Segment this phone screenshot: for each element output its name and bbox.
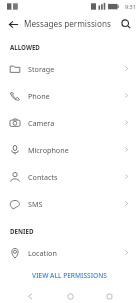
staticText: Messages permissions	[24, 18, 111, 29]
button[interactable]: VIEW ALL PERMISSIONS	[0, 266, 139, 284]
staticText: Contacts	[28, 172, 123, 182]
button[interactable]: Camera	[0, 109, 139, 136]
staticText: 9:31	[125, 3, 136, 10]
button[interactable]: Search	[117, 15, 135, 33]
staticText: VIEW ALL PERMISSIONS	[32, 271, 107, 280]
button[interactable]: Recent apps	[99, 290, 119, 303]
staticText: Phone	[28, 91, 123, 101]
staticText: Microphone	[28, 145, 123, 155]
button[interactable]: Back	[4, 15, 22, 33]
staticText: SMS	[28, 199, 123, 209]
button[interactable]: Phone	[0, 82, 139, 109]
button[interactable]: SMS	[0, 190, 139, 217]
button[interactable]: Microphone	[0, 136, 139, 163]
button[interactable]: Location	[0, 239, 139, 266]
button[interactable]: Back	[20, 290, 40, 303]
staticText: ALLOWED	[10, 43, 40, 51]
staticText: Location	[28, 248, 123, 258]
staticText: DENIED	[10, 227, 34, 235]
button[interactable]: Home	[60, 290, 80, 303]
button[interactable]: Contacts	[0, 163, 139, 190]
button[interactable]: Storage	[0, 55, 139, 82]
staticText: Storage	[28, 64, 123, 74]
staticText: Camera	[28, 118, 123, 128]
